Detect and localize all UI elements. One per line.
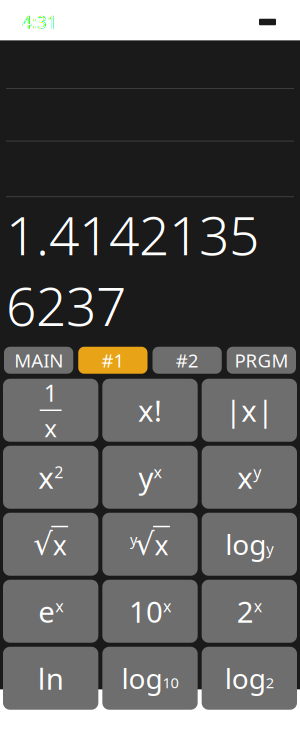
staticText: x — [153, 461, 161, 482]
staticText: x — [53, 527, 67, 563]
staticText: y — [253, 461, 261, 482]
staticText: 2 — [54, 461, 63, 482]
staticText: e — [38, 592, 55, 631]
button[interactable]: PRGM — [227, 347, 296, 374]
button[interactable]: log — [102, 647, 198, 710]
staticText: y — [266, 539, 273, 558]
staticText: x — [254, 595, 262, 616]
staticText: 2 — [237, 592, 254, 631]
button[interactable]: log — [202, 513, 297, 576]
staticText: 1 — [44, 377, 58, 408]
button[interactable]: y — [102, 446, 198, 509]
staticText: log — [225, 526, 266, 563]
staticText: 10 — [129, 592, 163, 631]
staticText: x — [163, 595, 171, 616]
staticText: log — [121, 660, 162, 697]
button[interactable]: #1 — [78, 347, 147, 374]
button[interactable]: x — [3, 446, 98, 509]
button[interactable]: log — [202, 647, 297, 710]
staticText: y — [138, 458, 153, 497]
staticText: x — [154, 527, 168, 563]
staticText: log — [225, 660, 266, 697]
staticText: PRGM — [234, 348, 288, 373]
button[interactable]: MAIN — [4, 347, 73, 374]
staticText: x! — [138, 391, 162, 430]
staticText: 4:31 — [22, 10, 57, 33]
staticText: x — [38, 458, 54, 497]
staticText: 2 — [266, 673, 274, 692]
staticText: x — [55, 595, 63, 616]
button[interactable]: y — [102, 513, 198, 576]
button[interactable]: ln — [3, 647, 98, 710]
button[interactable]: x! — [102, 379, 198, 442]
button[interactable]: x — [202, 446, 297, 509]
staticText: #2 — [176, 348, 199, 373]
staticText: √ — [33, 527, 53, 562]
staticText: |x| — [225, 391, 273, 430]
staticText: 10 — [162, 673, 178, 692]
button[interactable]: 2 — [202, 580, 297, 643]
button[interactable]: #2 — [152, 347, 222, 374]
staticText: #1 — [101, 348, 124, 373]
staticText: MAIN — [14, 348, 63, 373]
staticText: 1.41421356237 — [6, 199, 259, 341]
button[interactable]: 10 — [102, 580, 198, 643]
staticText: x — [237, 458, 253, 497]
staticText: y — [130, 529, 137, 549]
button[interactable]: e — [3, 580, 98, 643]
button[interactable]: 1 — [3, 379, 98, 442]
button[interactable]: |x| — [202, 379, 297, 442]
button[interactable]: √ — [3, 513, 98, 576]
staticText: √ — [135, 527, 155, 562]
staticText: x — [44, 412, 57, 444]
staticText: ln — [38, 659, 64, 698]
